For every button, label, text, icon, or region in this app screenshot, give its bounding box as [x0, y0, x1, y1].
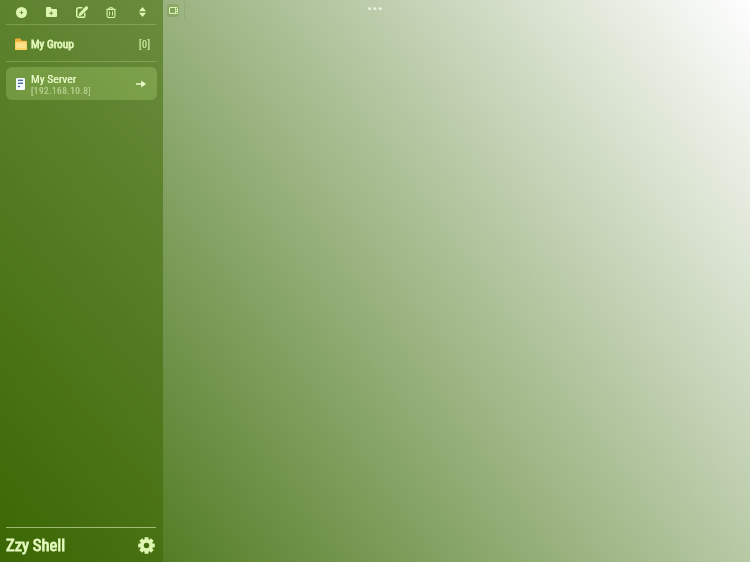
button[interactable]: Terminal tab: [167, 4, 179, 17]
staticText: Zzy Shell: [6, 536, 66, 556]
button[interactable]: New folder: [40, 1, 62, 23]
button[interactable]: Settings: [135, 534, 158, 557]
button[interactable]: Delete: [100, 1, 122, 23]
button[interactable]: Edit: [70, 1, 92, 23]
button[interactable]: More options: [364, 3, 386, 14]
staticText: My Server: [31, 72, 77, 86]
button[interactable]: Add server: [10, 1, 32, 23]
button[interactable]: Sort: [131, 1, 153, 23]
staticText: My Group: [31, 37, 74, 50]
button[interactable]: My Group: [0, 25, 163, 61]
staticText: [0]: [139, 39, 151, 51]
button[interactable]: My Server: [6, 67, 157, 100]
staticText: [192.168.10.8]: [31, 85, 92, 96]
